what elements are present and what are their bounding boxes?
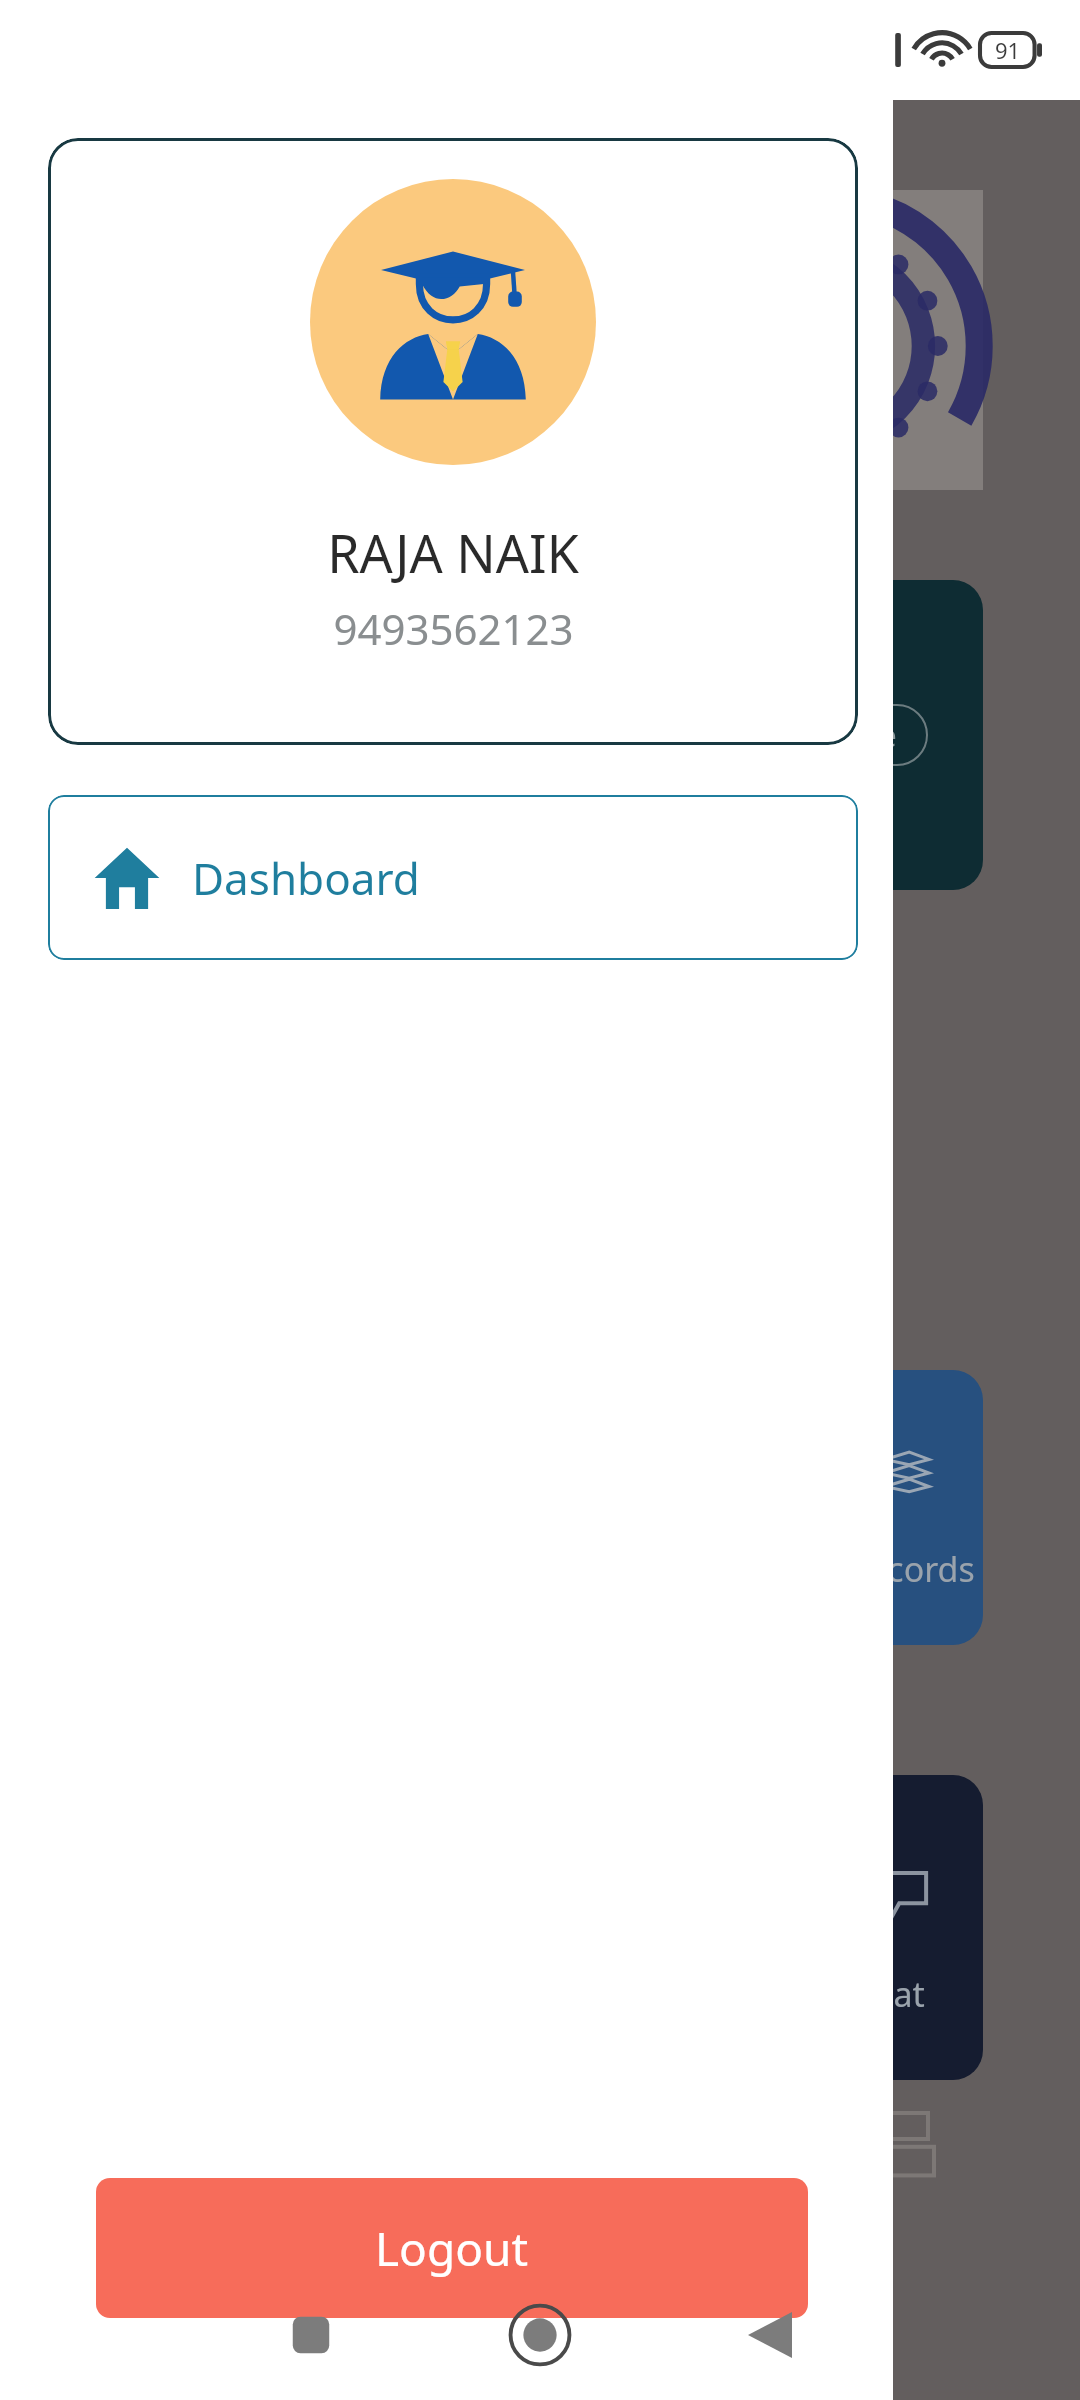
staticText: Dashboard: [192, 848, 420, 908]
button[interactable]: Dashboard: [48, 795, 858, 960]
button[interactable]: RAJA NAIK: [48, 138, 858, 745]
staticText: Records: [847, 1546, 975, 1592]
button[interactable]: Logout: [96, 2178, 808, 2318]
staticText: Logout: [375, 2217, 529, 2280]
button[interactable]: Back: [745, 2310, 795, 2360]
button[interactable]: Recent apps: [287, 2311, 335, 2359]
staticText: 9493562123: [333, 600, 574, 657]
staticText: 91: [995, 35, 1021, 65]
button[interactable]: Home: [508, 2303, 572, 2367]
staticText: RAJA NAIK: [327, 517, 579, 588]
staticText: file: [854, 715, 897, 756]
staticText: Chat: [851, 1971, 925, 2017]
